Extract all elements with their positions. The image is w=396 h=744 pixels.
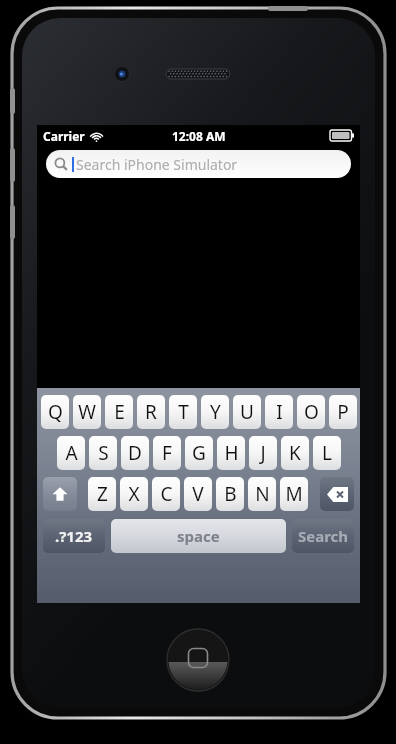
- staticText: U: [240, 399, 254, 425]
- staticText: R: [145, 399, 157, 425]
- button[interactable]: D: [121, 436, 149, 470]
- staticText: Search iPhone Simulator: [76, 155, 238, 174]
- button[interactable]: N: [248, 477, 276, 511]
- staticText: M: [285, 481, 303, 507]
- staticText: K: [289, 440, 301, 466]
- button[interactable]: X: [120, 477, 148, 511]
- staticText: G: [192, 440, 206, 466]
- button[interactable]: space: [111, 519, 286, 553]
- button[interactable]: G: [185, 436, 213, 470]
- staticText: V: [192, 481, 204, 507]
- staticText: I: [276, 399, 283, 425]
- staticText: A: [65, 440, 78, 466]
- button[interactable]: .?123: [43, 519, 105, 553]
- staticText: Carrier: [43, 128, 85, 144]
- staticText: Y: [210, 399, 221, 425]
- staticText: Z: [97, 481, 108, 507]
- button[interactable]: P: [329, 395, 357, 429]
- staticText: P: [337, 399, 349, 425]
- button[interactable]: B: [216, 477, 244, 511]
- staticText: space: [177, 526, 220, 546]
- button[interactable]: V: [184, 477, 212, 511]
- staticText: E: [114, 399, 125, 425]
- button[interactable]: F: [153, 436, 181, 470]
- button[interactable]: M: [280, 477, 308, 511]
- button[interactable]: Z: [88, 477, 116, 511]
- button[interactable]: A: [57, 436, 85, 470]
- staticText: J: [260, 440, 266, 466]
- button[interactable]: Shift: [43, 477, 77, 511]
- staticText: D: [128, 440, 142, 466]
- staticText: B: [224, 481, 237, 507]
- button[interactable]: Q: [41, 395, 69, 429]
- staticText: Q: [48, 399, 63, 425]
- button[interactable]: O: [297, 395, 325, 429]
- button[interactable]: U: [233, 395, 261, 429]
- button[interactable]: Search: [292, 519, 354, 553]
- staticText: T: [178, 399, 189, 425]
- staticText: N: [255, 481, 270, 507]
- button[interactable]: Y: [201, 395, 229, 429]
- staticText: O: [304, 399, 319, 425]
- staticText: X: [128, 481, 140, 507]
- button[interactable]: R: [137, 395, 165, 429]
- staticText: W: [78, 399, 96, 425]
- button[interactable]: W: [73, 395, 101, 429]
- button[interactable]: C: [152, 477, 180, 511]
- button[interactable]: H: [217, 436, 245, 470]
- button[interactable]: L: [313, 436, 341, 470]
- staticText: Search: [298, 526, 349, 546]
- staticText: .?123: [55, 526, 93, 546]
- staticText: S: [98, 440, 109, 466]
- button[interactable]: J: [249, 436, 277, 470]
- button[interactable]: S: [89, 436, 117, 470]
- button[interactable]: E: [105, 395, 133, 429]
- button[interactable]: Search iPhone Simulator: [46, 150, 351, 178]
- staticText: L: [322, 440, 332, 466]
- button[interactable]: I: [265, 395, 293, 429]
- staticText: H: [224, 440, 239, 466]
- button[interactable]: Delete: [320, 477, 354, 511]
- button[interactable]: T: [169, 395, 197, 429]
- staticText: 12:08 AM: [172, 128, 226, 144]
- button[interactable]: K: [281, 436, 309, 470]
- staticText: F: [162, 440, 172, 466]
- staticText: C: [160, 481, 173, 507]
